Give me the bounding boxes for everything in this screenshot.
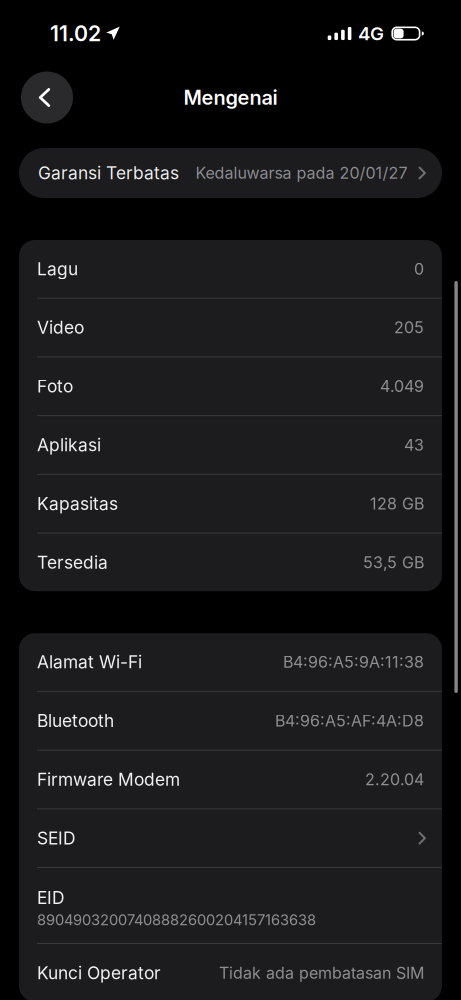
- button[interactable]: EID: [19, 868, 442, 943]
- staticText: 0: [414, 259, 424, 279]
- staticText: 205: [394, 318, 424, 337]
- staticText: EID: [37, 887, 65, 908]
- staticText: Aplikasi: [37, 434, 101, 455]
- staticText: SEID: [37, 828, 76, 849]
- staticText: Kedaluwarsa pada 20/01/27: [195, 163, 407, 183]
- staticText: Tersedia: [37, 552, 108, 573]
- button[interactable]: Kapasitas: [19, 475, 442, 532]
- staticText: 89049032007408882600204157163638: [37, 911, 316, 929]
- staticText: 11.02: [50, 21, 101, 46]
- button[interactable]: Firmware Modem: [19, 751, 442, 808]
- staticText: 43: [404, 435, 424, 455]
- staticText: Tidak ada pembatasan SIM: [219, 963, 424, 983]
- staticText: B4:96:A5:AF:4A:D8: [275, 711, 424, 730]
- button[interactable]: Tersedia: [19, 533, 442, 591]
- button[interactable]: Kunci Operator: [19, 944, 442, 1000]
- button[interactable]: SEID: [19, 809, 442, 867]
- staticText: Lagu: [37, 258, 78, 279]
- staticText: 4.049: [380, 377, 424, 396]
- button[interactable]: Back: [21, 71, 73, 123]
- button[interactable]: Lagu: [19, 240, 442, 298]
- button[interactable]: Garansi Terbatas: [0, 148, 461, 198]
- staticText: Foto: [37, 376, 73, 397]
- staticText: Mengenai: [183, 85, 277, 110]
- button[interactable]: Video: [19, 299, 442, 356]
- staticText: Garansi Terbatas: [38, 162, 179, 183]
- button[interactable]: Alamat Wi-Fi: [19, 633, 442, 691]
- staticText: Kunci Operator: [37, 962, 161, 983]
- button[interactable]: Foto: [19, 357, 442, 415]
- staticText: 128 GB: [370, 494, 424, 513]
- button[interactable]: Bluetooth: [19, 692, 442, 750]
- staticText: 2.20.04: [365, 770, 424, 789]
- staticText: B4:96:A5:9A:11:38: [283, 652, 424, 672]
- staticText: 53,5 GB: [363, 553, 424, 572]
- staticText: Alamat Wi-Fi: [37, 652, 142, 673]
- staticText: Bluetooth: [37, 710, 114, 731]
- staticText: Kapasitas: [37, 493, 118, 514]
- button[interactable]: Aplikasi: [19, 416, 442, 474]
- staticText: Video: [37, 317, 84, 338]
- staticText: Firmware Modem: [37, 769, 180, 790]
- staticText: 4G: [358, 22, 384, 45]
